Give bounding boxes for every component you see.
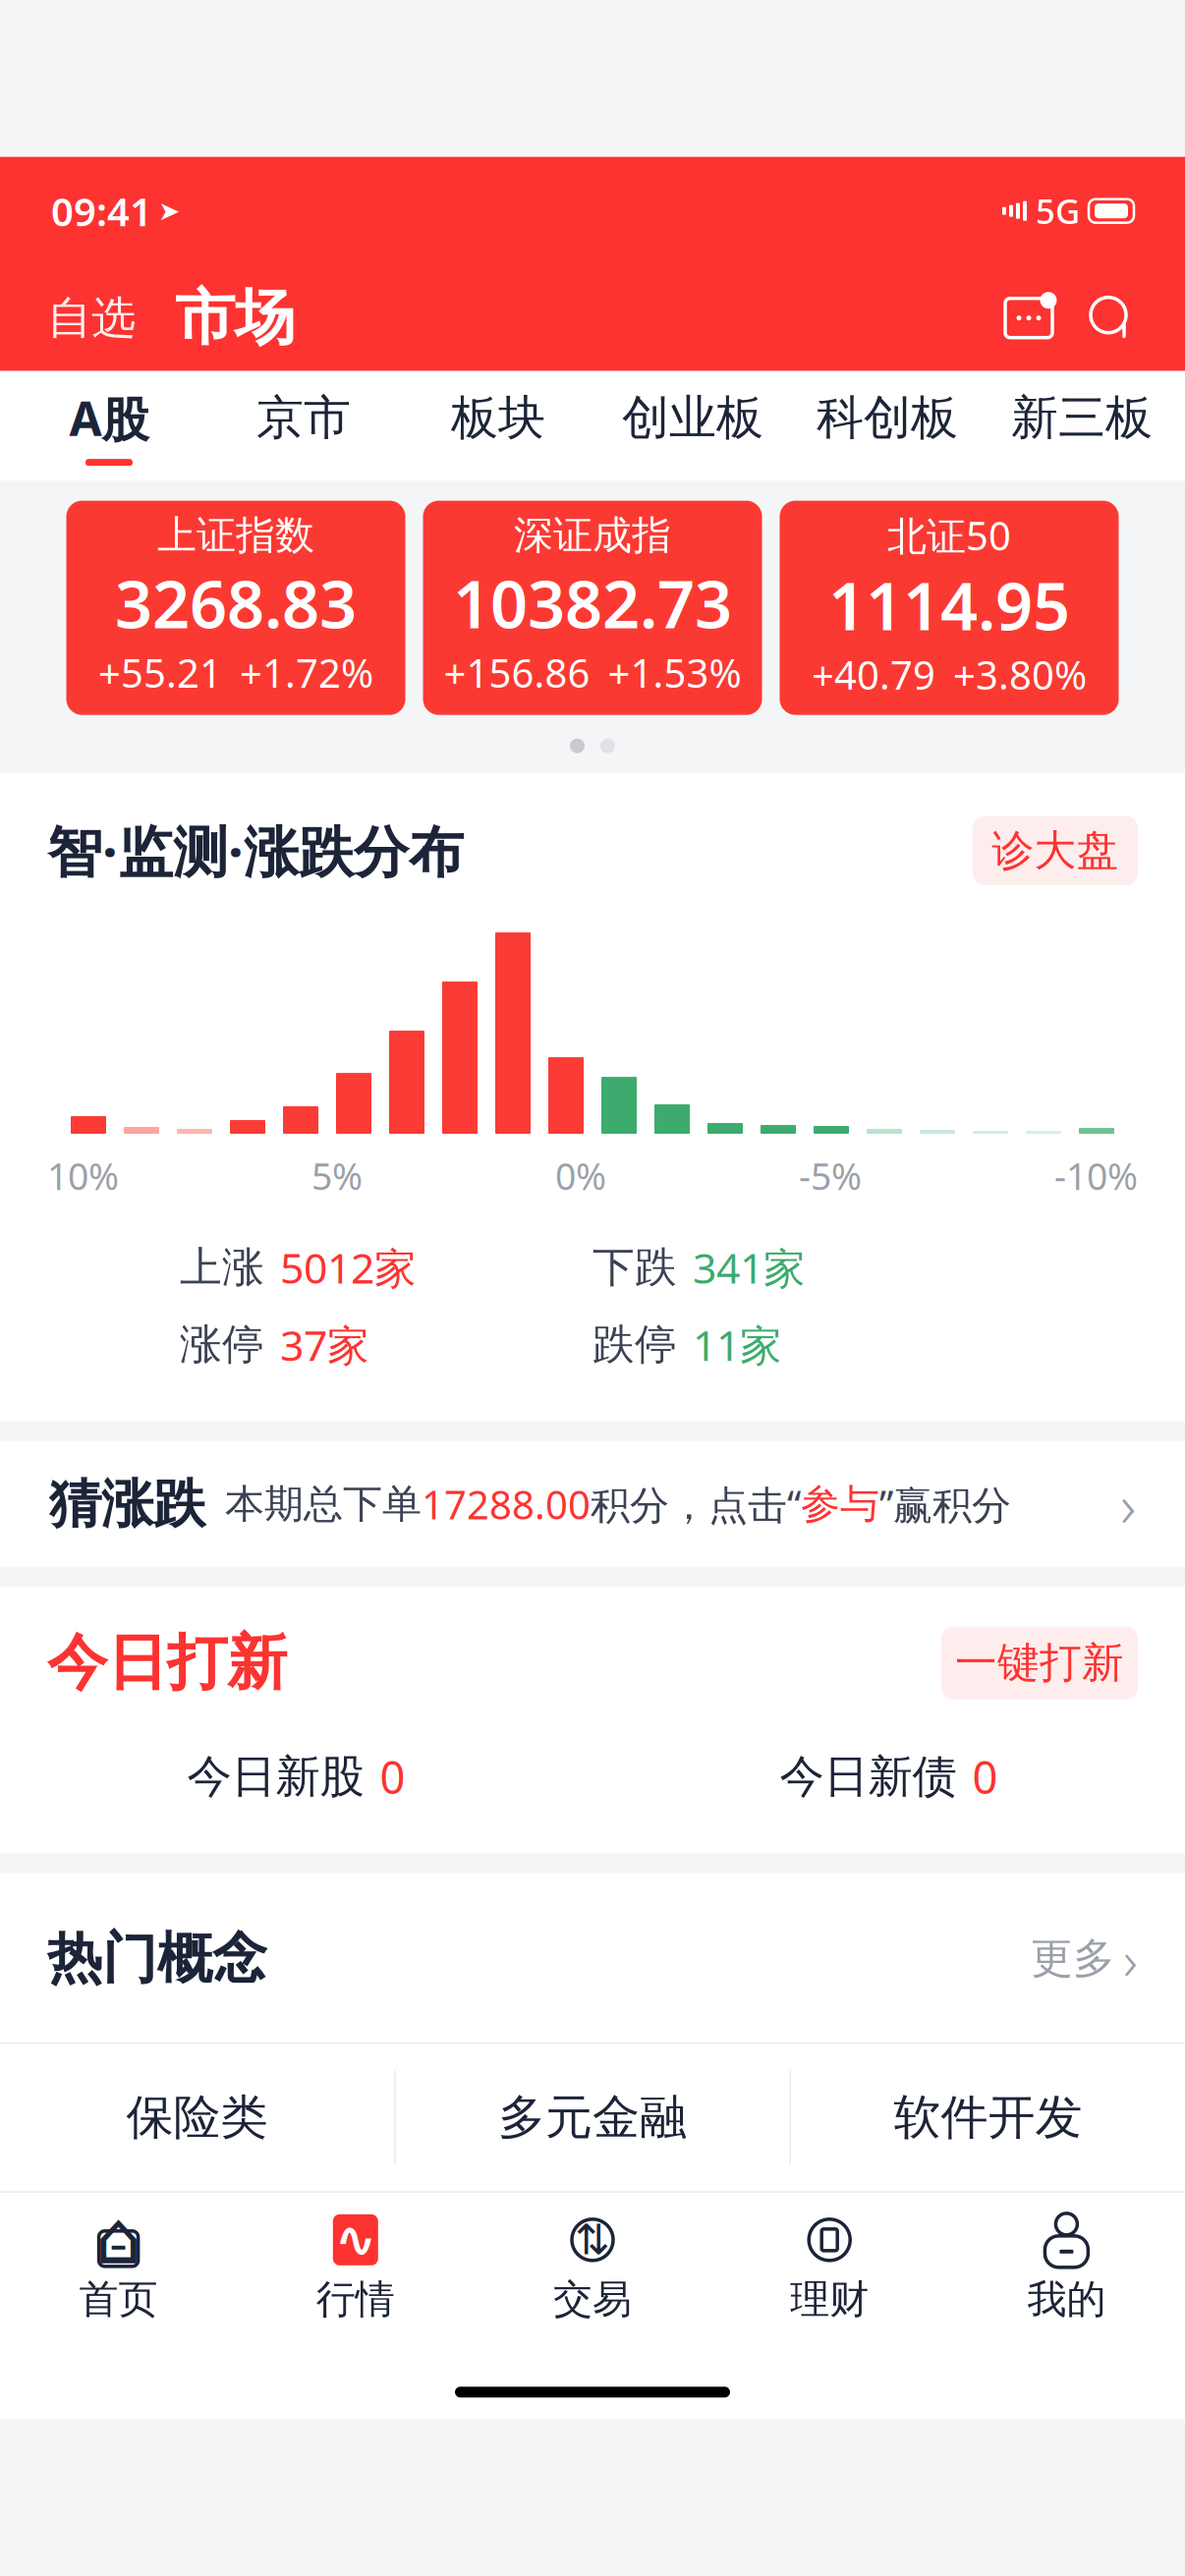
staticText: 热门概念 — [47, 1925, 267, 1993]
staticText: 17288.00 — [422, 1478, 591, 1530]
staticText: › — [1120, 1464, 1136, 1544]
staticText: 5G — [1036, 188, 1080, 233]
button[interactable]: 自选 — [39, 281, 143, 355]
staticText: ⌂ — [95, 2196, 142, 2279]
staticText: 积分，点击“ — [591, 1478, 801, 1530]
staticText: 行情 — [316, 2275, 395, 2323]
staticText: 智·监测·涨跌分布 — [47, 814, 464, 887]
staticText: ∿ — [335, 2212, 376, 2268]
staticText: 创业板 — [622, 389, 763, 447]
staticText: 1114.95 — [828, 561, 1070, 648]
staticText: 上证指数 — [157, 511, 314, 559]
staticText: 深证成指 — [514, 511, 671, 559]
staticText: 37家 — [280, 1317, 369, 1372]
staticText: -10% — [1054, 1151, 1138, 1200]
button[interactable]: 京市 — [206, 371, 401, 481]
staticText: 北证50 — [887, 509, 1011, 561]
staticText: 10382.73 — [453, 559, 732, 646]
staticText: 板块 — [451, 389, 545, 447]
button[interactable]: 软件开发 — [791, 2044, 1185, 2191]
button[interactable]: 深证成指 — [423, 501, 762, 715]
staticText: 本期总下单 — [225, 1480, 422, 1528]
staticText: 0 — [380, 1747, 405, 1806]
button[interactable]: 板块 — [401, 371, 595, 481]
staticText: 涨停 — [180, 1319, 264, 1370]
staticText: 多元金融 — [498, 2089, 687, 2147]
staticText: 0% — [555, 1151, 606, 1200]
button[interactable]: ⇅ — [474, 2199, 711, 2337]
staticText: 下跌 — [592, 1242, 677, 1293]
button[interactable]: 理财 — [711, 2199, 948, 2337]
staticText: 11家 — [693, 1317, 782, 1372]
button[interactable]: ∿ — [237, 2199, 474, 2337]
button[interactable]: 更多 — [1031, 1912, 1138, 2005]
staticText: 参与 — [801, 1480, 879, 1528]
button[interactable]: 今日新债 — [592, 1747, 1185, 1806]
button[interactable]: 诊大盘 — [973, 816, 1138, 885]
staticText: 今日新债 — [780, 1749, 957, 1804]
button[interactable]: 科创板 — [790, 371, 985, 481]
staticText: 猜涨跌 — [49, 1472, 205, 1536]
button[interactable]: 我的 — [948, 2199, 1185, 2337]
button[interactable]: 猜涨跌 — [0, 1441, 1185, 1567]
staticText: ⇅ — [575, 2216, 610, 2264]
staticText: 软件开发 — [894, 2089, 1082, 2147]
staticText: 自选 — [47, 291, 136, 345]
staticText: 保险类 — [126, 2089, 268, 2147]
button[interactable]: 消息 — [994, 284, 1063, 352]
button[interactable]: A股 — [12, 371, 206, 481]
button[interactable]: 保险类 — [0, 2044, 394, 2191]
staticText: ”赢积分 — [879, 1478, 1011, 1530]
staticText: 10% — [47, 1151, 119, 1200]
staticText: +1.72% — [240, 646, 373, 699]
staticText: +1.53% — [608, 646, 741, 699]
staticText: -5% — [799, 1151, 862, 1200]
button[interactable]: 今日新股 — [0, 1747, 592, 1806]
staticText: 诊大盘 — [992, 825, 1119, 876]
staticText: 09:41 — [51, 185, 152, 237]
staticText: 新三板 — [1011, 389, 1153, 447]
staticText: 今日新股 — [187, 1749, 364, 1804]
staticText: 跌停 — [592, 1319, 677, 1370]
staticText: 京市 — [256, 389, 351, 447]
staticText: 科创板 — [817, 389, 958, 447]
staticText: 341家 — [693, 1239, 806, 1295]
staticText: 更多 — [1031, 1933, 1115, 1984]
button[interactable]: 新三板 — [985, 371, 1179, 481]
staticText: › — [1123, 1922, 1138, 1995]
staticText: ➤ — [158, 196, 180, 226]
staticText: 理财 — [790, 2275, 869, 2323]
button[interactable]: 搜索 — [1077, 284, 1146, 352]
button[interactable]: 创业板 — [595, 371, 790, 481]
staticText: +55.21 — [98, 646, 222, 699]
staticText: 0 — [972, 1747, 998, 1806]
button[interactable]: ⌂ — [0, 2199, 237, 2337]
button[interactable]: 一键打新 — [941, 1627, 1138, 1699]
staticText: 上涨 — [180, 1242, 264, 1293]
button[interactable]: 市场 — [165, 275, 305, 361]
staticText: 我的 — [1027, 2275, 1106, 2323]
staticText: 5% — [311, 1151, 363, 1200]
staticText: 今日打新 — [47, 1626, 287, 1700]
button[interactable]: 多元金融 — [395, 2044, 790, 2191]
staticText: 一键打新 — [955, 1637, 1124, 1689]
button[interactable]: 北证50 — [780, 501, 1119, 715]
button[interactable]: 上证指数 — [66, 501, 405, 715]
staticText: +3.80% — [953, 648, 1087, 700]
staticText: 5012家 — [280, 1239, 417, 1295]
staticText: +40.79 — [812, 648, 935, 700]
staticText: 交易 — [553, 2275, 632, 2323]
staticText: 市场 — [175, 281, 295, 355]
staticText: 3268.83 — [115, 559, 357, 646]
staticText: A股 — [69, 386, 149, 449]
staticText: +156.86 — [444, 646, 590, 699]
staticText: 首页 — [79, 2275, 158, 2323]
